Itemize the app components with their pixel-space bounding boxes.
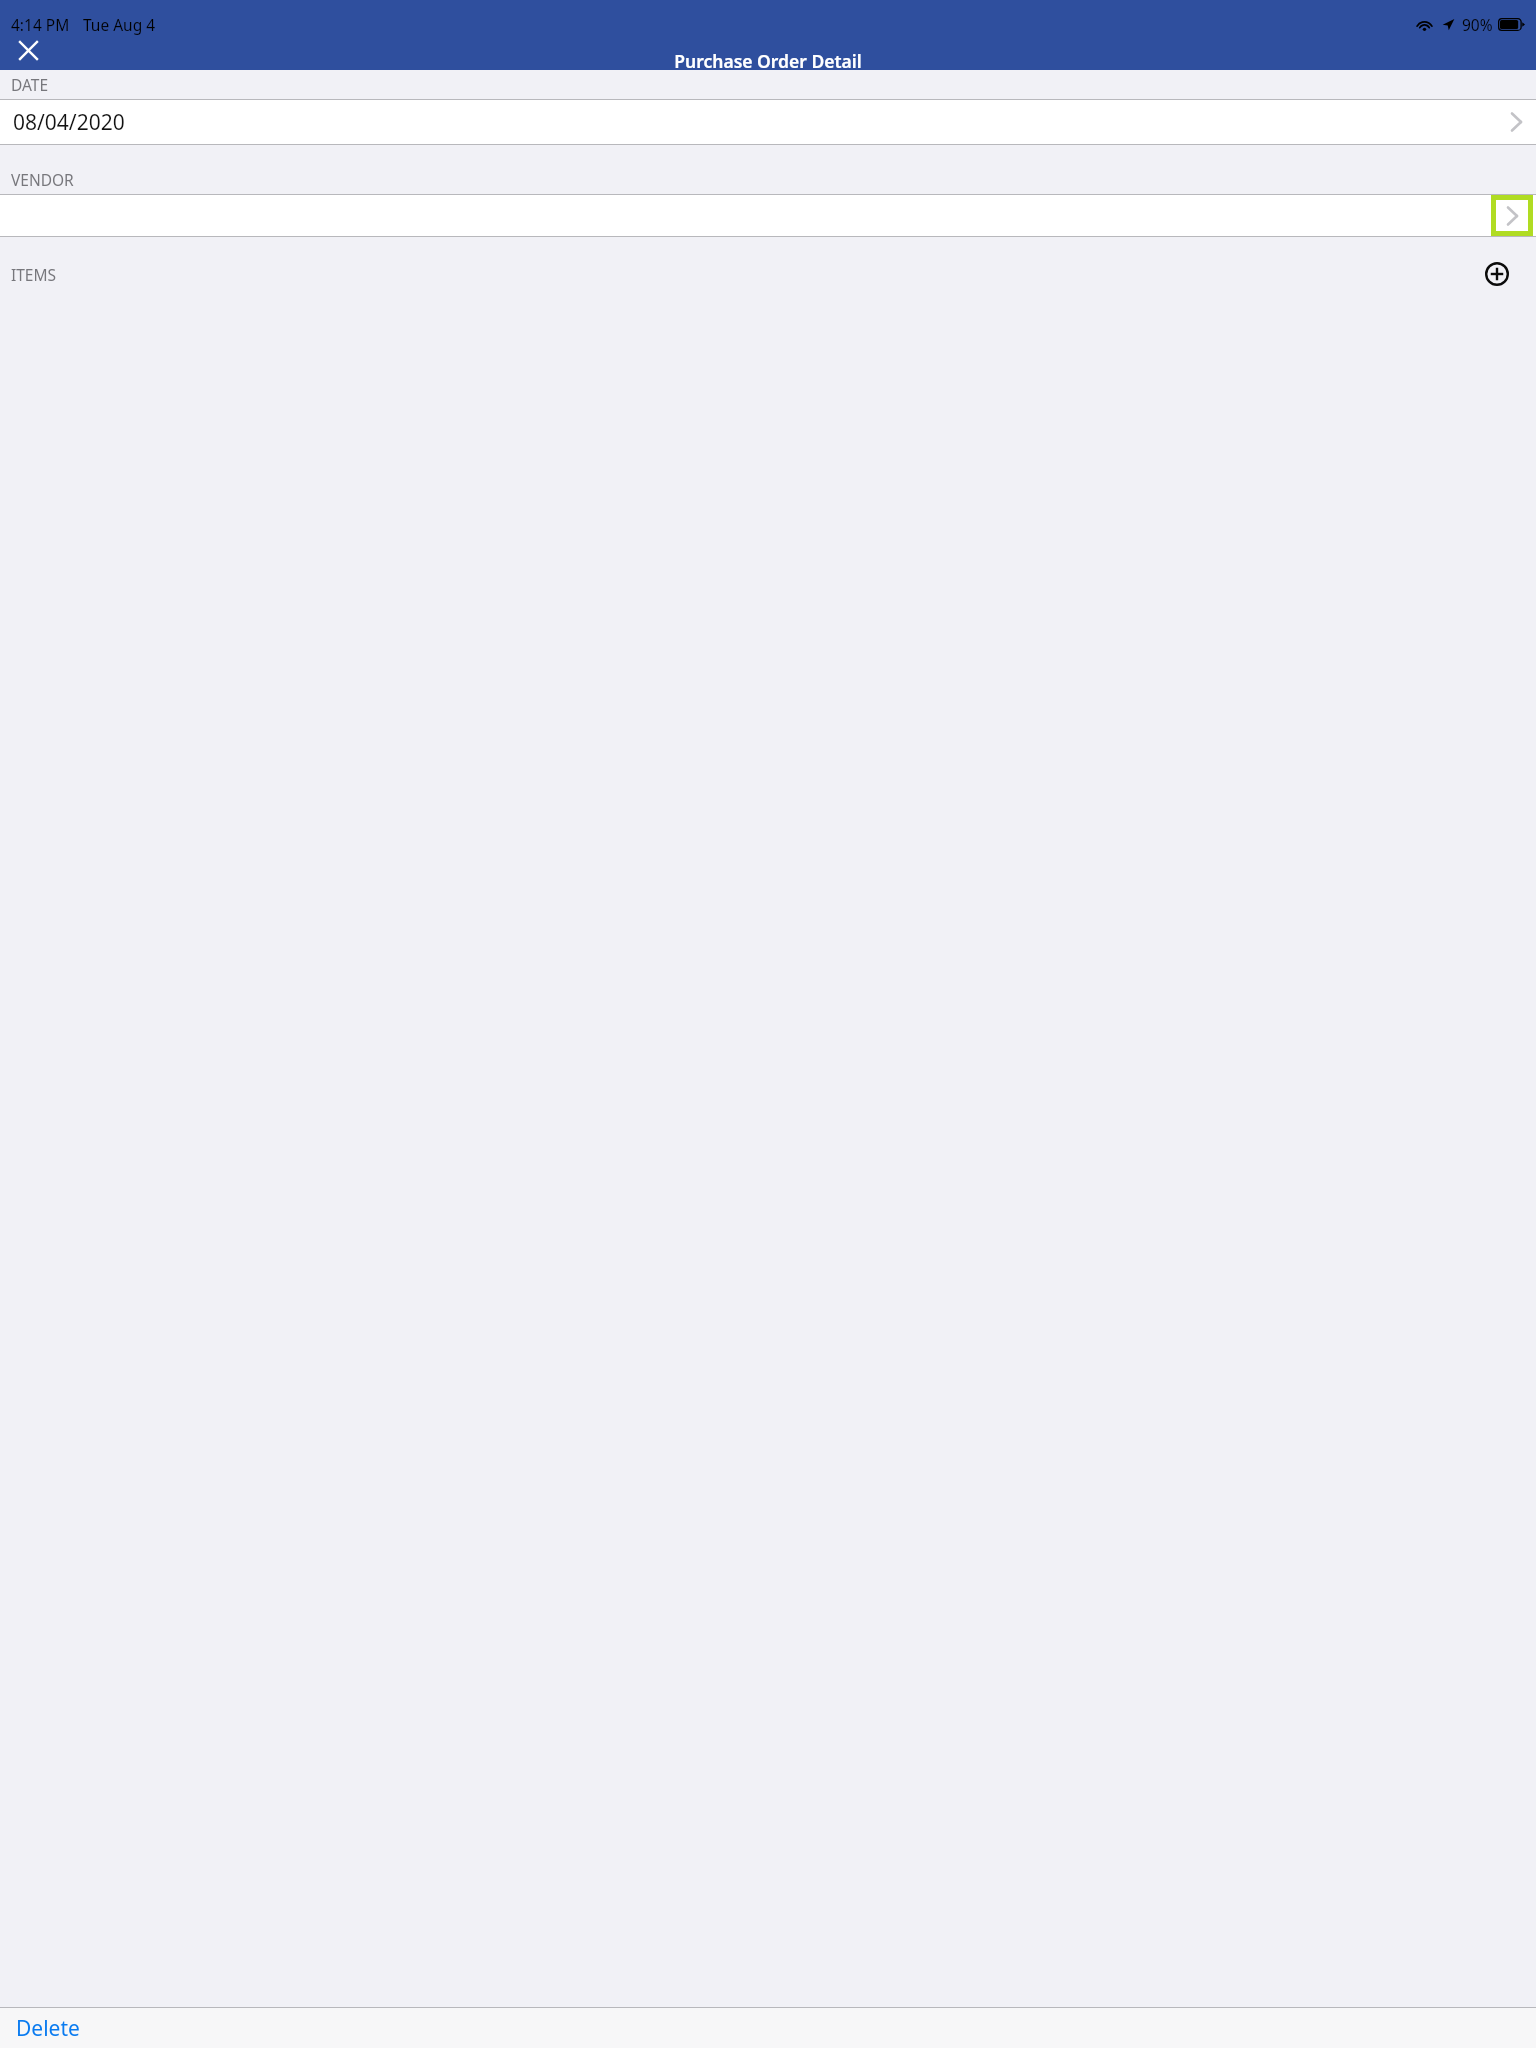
staticText: 08/04/2020 <box>13 108 125 137</box>
button[interactable]: Close <box>8 30 48 70</box>
staticText: Purchase Order Detail <box>674 49 862 70</box>
button[interactable]: Select vendor <box>1496 200 1528 231</box>
staticText: Delete <box>16 2014 80 2043</box>
staticText: DATE <box>11 74 49 95</box>
button[interactable]: Delete <box>16 2014 80 2043</box>
staticText: ITEMS <box>11 264 57 285</box>
staticText: Tue Aug 4 <box>83 14 156 35</box>
staticText: 4:14 PM <box>11 14 70 35</box>
staticText: 90% <box>1462 14 1493 35</box>
staticText: VENDOR <box>11 169 74 190</box>
button[interactable]: 08/04/2020 <box>0 100 1536 144</box>
button[interactable]: Add item <box>1475 252 1519 296</box>
button[interactable]: Select vendor <box>0 195 1536 236</box>
